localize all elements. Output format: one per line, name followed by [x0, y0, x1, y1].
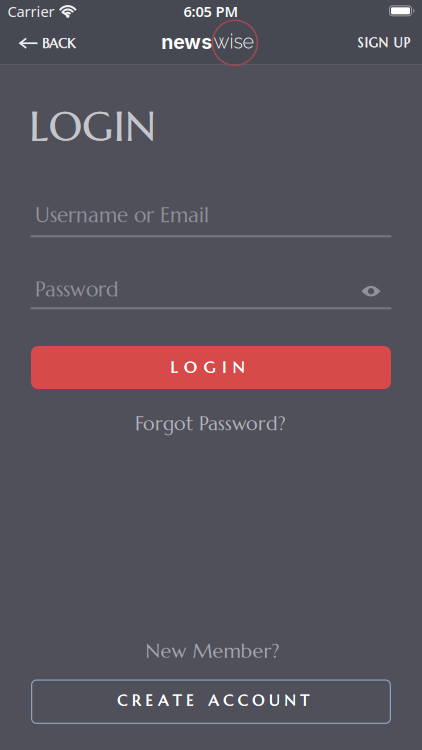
- staticText: LOGIN: [29, 100, 156, 152]
- staticText: CREATE ACCOUNT: [117, 691, 309, 710]
- button[interactable]: Password: [30, 265, 391, 311]
- button[interactable]: Forgot Password?: [135, 411, 286, 436]
- staticText: wise: [213, 30, 254, 53]
- staticText: BACK: [42, 35, 76, 51]
- staticText: New Member?: [145, 639, 279, 663]
- button[interactable]: SIGN UP: [329, 26, 409, 60]
- staticText: SIGN UP: [358, 35, 410, 51]
- staticText: LOGIN: [171, 357, 245, 377]
- staticText: 6:05 PM: [183, 2, 238, 21]
- button[interactable]: LOGIN: [31, 346, 391, 389]
- staticText: news: [161, 30, 212, 54]
- staticText: BACK: [42, 35, 76, 52]
- staticText: Password: [35, 276, 118, 302]
- staticText: Carrier: [7, 2, 54, 21]
- staticText: CREATE ACCOUNT: [117, 691, 309, 710]
- staticText: LOGIN: [29, 100, 156, 152]
- staticText: SIGN UP: [358, 35, 410, 51]
- staticText: LOGIN: [170, 357, 245, 377]
- staticText: SIGN UP: [357, 35, 409, 51]
- staticText: Forgot Password?: [135, 411, 286, 436]
- staticText: Username or Email: [35, 202, 209, 228]
- button[interactable]: Username or Email: [30, 193, 391, 239]
- staticText: BACK: [42, 35, 76, 51]
- button[interactable]: BACK: [19, 26, 85, 60]
- button[interactable]: CREATE ACCOUNT: [31, 679, 391, 724]
- staticText: CREATE ACCOUNT: [118, 691, 309, 710]
- staticText: LOGIN: [170, 357, 245, 377]
